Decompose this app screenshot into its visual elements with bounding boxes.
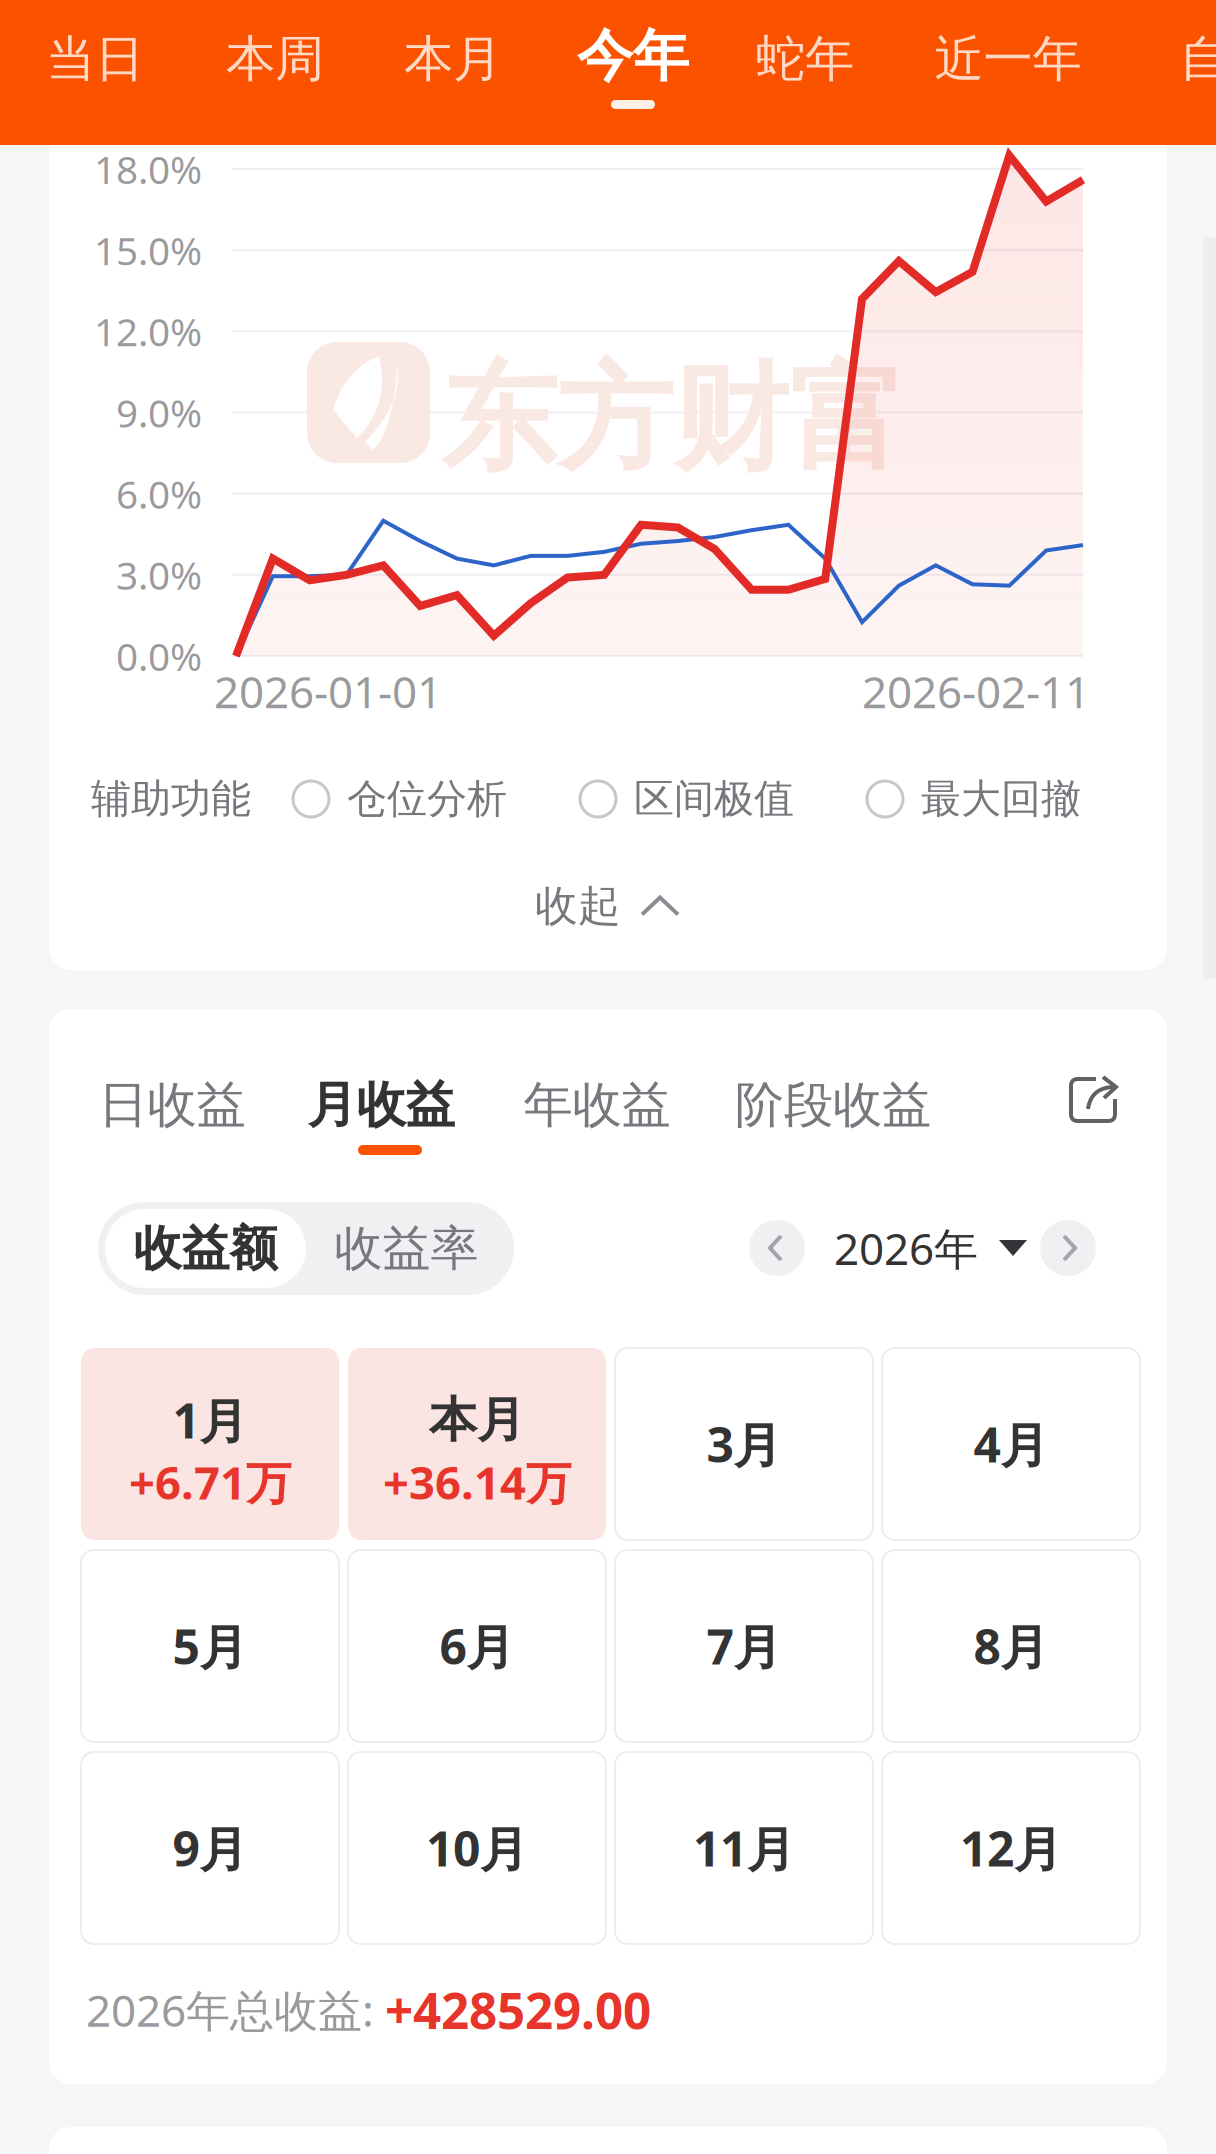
button[interactable]: 下一年: [1040, 1220, 1096, 1276]
button[interactable]: 收益率: [306, 1209, 507, 1288]
button[interactable]: 7月: [615, 1550, 873, 1742]
button[interactable]: 收益额: [105, 1209, 306, 1288]
staticText: 9.0%: [116, 387, 202, 438]
button[interactable]: 仓位分析: [293, 771, 507, 827]
button[interactable]: 3月: [615, 1348, 873, 1540]
button[interactable]: 本月: [323, 0, 583, 145]
staticText: 2026-01-01: [214, 662, 442, 720]
button[interactable]: 蛇年: [675, 0, 935, 145]
button[interactable]: 日收益: [22, 1049, 322, 1161]
staticText: 本月: [404, 29, 502, 89]
staticText: 12.0%: [94, 306, 202, 357]
staticText: 蛇年: [756, 29, 854, 89]
staticText: 当日: [46, 29, 144, 89]
staticText: 最大回撤: [921, 774, 1081, 823]
staticText: 近一年: [934, 29, 1081, 89]
staticText: 3月: [706, 1412, 781, 1476]
staticText: 年收益: [523, 1075, 670, 1135]
staticText: 月收益: [307, 1075, 454, 1135]
staticText: 本月: [429, 1390, 525, 1449]
staticText: +36.14万: [383, 1452, 571, 1512]
button[interactable]: 最大回撤: [867, 771, 1081, 827]
staticText: 日收益: [98, 1075, 245, 1135]
button[interactable]: 6月: [348, 1550, 606, 1742]
staticText: 2026-02-11: [862, 662, 1090, 720]
staticText: 3.0%: [116, 549, 202, 600]
staticText: 12月: [960, 1816, 1062, 1880]
staticText: 5月: [172, 1614, 247, 1678]
button[interactable]: 5月: [81, 1550, 339, 1742]
button[interactable]: 区间极值: [580, 771, 794, 827]
staticText: 本周: [226, 29, 324, 89]
button[interactable]: 本月: [348, 1348, 606, 1540]
staticText: 区间极值: [634, 774, 794, 823]
staticText: 18.0%: [94, 143, 202, 195]
staticText: 收益率: [334, 1219, 478, 1278]
button[interactable]: 1月: [81, 1348, 339, 1540]
staticText: 7月: [706, 1614, 781, 1678]
staticText: 自: [1179, 29, 1216, 89]
staticText: 10月: [426, 1816, 528, 1880]
button[interactable]: 12月: [882, 1752, 1140, 1944]
button[interactable]: 分享: [1067, 1073, 1121, 1127]
staticText: 1月: [172, 1388, 247, 1452]
button[interactable]: 收起: [49, 864, 1167, 948]
staticText: 8月: [973, 1614, 1048, 1678]
staticText: 2026年: [834, 1219, 978, 1277]
staticText: 收益额: [133, 1219, 277, 1278]
staticText: 6月: [439, 1614, 514, 1678]
staticText: 阶段收益: [735, 1075, 931, 1135]
button[interactable]: 上一年: [749, 1220, 805, 1276]
staticText: 今年: [577, 22, 689, 90]
staticText: 收起: [535, 880, 621, 932]
button[interactable]: 选择年份: [834, 1220, 1028, 1276]
staticText: 东方财富: [441, 348, 905, 490]
button[interactable]: 年收益: [447, 1049, 747, 1161]
staticText: 11月: [693, 1816, 795, 1880]
button[interactable]: 当日: [0, 0, 225, 145]
staticText: 0.0%: [116, 630, 202, 682]
button[interactable]: 4月: [882, 1348, 1140, 1540]
button[interactable]: 阶段收益: [683, 1049, 983, 1161]
button[interactable]: 9月: [81, 1752, 339, 1944]
button[interactable]: 10月: [348, 1752, 606, 1944]
button[interactable]: 本周: [145, 0, 405, 145]
staticText: 4月: [973, 1412, 1048, 1476]
staticText: 15.0%: [94, 224, 202, 276]
button[interactable]: 自: [1074, 0, 1216, 145]
staticText: +6.71万: [129, 1452, 291, 1512]
button[interactable]: 8月: [882, 1550, 1140, 1742]
staticText: 辅助功能: [91, 774, 251, 823]
staticText: 仓位分析: [347, 774, 507, 823]
button[interactable]: 11月: [615, 1752, 873, 1944]
staticText: 6.0%: [116, 468, 202, 519]
button[interactable]: 今年: [503, 0, 763, 145]
button[interactable]: 月收益: [231, 1049, 531, 1161]
staticText: 2026年总收益:: [86, 1980, 385, 2039]
staticText: 9月: [172, 1816, 247, 1880]
button[interactable]: 近一年: [878, 0, 1138, 145]
staticText: +428529.00: [385, 1977, 651, 2042]
